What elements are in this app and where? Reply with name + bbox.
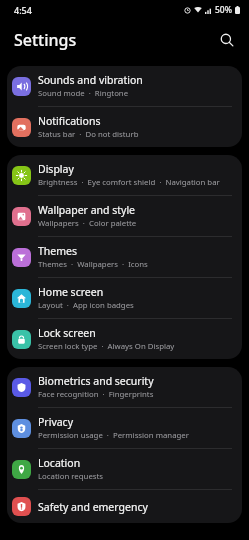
staticText: Screen lock type · Always On Display <box>38 341 175 352</box>
button[interactable]: Search <box>213 26 241 54</box>
staticText: Sound mode · Ringtone <box>38 88 129 99</box>
staticText: 4:54 <box>14 4 32 16</box>
button[interactable]: Location <box>7 449 242 489</box>
staticText: Sounds and vibration <box>38 73 143 87</box>
staticText: Permission usage · Permission manager <box>38 430 189 441</box>
staticText: 50% <box>215 4 232 16</box>
staticText: Lock screen <box>38 326 96 340</box>
staticText: Wallpaper and style <box>38 203 136 217</box>
staticText: Status bar · Do not disturb <box>38 129 139 140</box>
button[interactable]: Themes <box>7 237 242 277</box>
button[interactable]: Display <box>7 155 242 195</box>
staticText: Themes <box>38 244 78 258</box>
staticText: Home screen <box>38 285 104 299</box>
staticText: Face recognition · Fingerprints <box>38 389 154 400</box>
staticText: Themes · Wallpapers · Icons <box>38 259 148 270</box>
staticText: Location requests <box>38 471 104 482</box>
staticText: Settings <box>14 29 77 51</box>
staticText: Notifications <box>38 114 101 128</box>
staticText: Safety and emergency <box>38 500 148 514</box>
button[interactable]: Sounds and vibration <box>7 66 242 106</box>
button[interactable]: Wallpaper and style <box>7 196 242 236</box>
button[interactable]: Lock screen <box>7 319 242 359</box>
button[interactable]: Safety and emergency <box>7 490 242 523</box>
button[interactable]: Home screen <box>7 278 242 318</box>
button[interactable]: Biometrics and security <box>7 367 242 407</box>
staticText: Privacy <box>38 415 74 429</box>
staticText: Brightness · Eye comfort shield · Naviga… <box>38 177 220 188</box>
staticText: Location <box>38 456 81 470</box>
staticText: Wallpapers · Color palette <box>38 218 137 229</box>
button[interactable]: Notifications <box>7 107 242 147</box>
staticText: Biometrics and security <box>38 374 154 388</box>
staticText: Display <box>38 162 74 176</box>
staticText: Layout · App icon badges <box>38 300 134 311</box>
button[interactable]: Privacy <box>7 408 242 448</box>
